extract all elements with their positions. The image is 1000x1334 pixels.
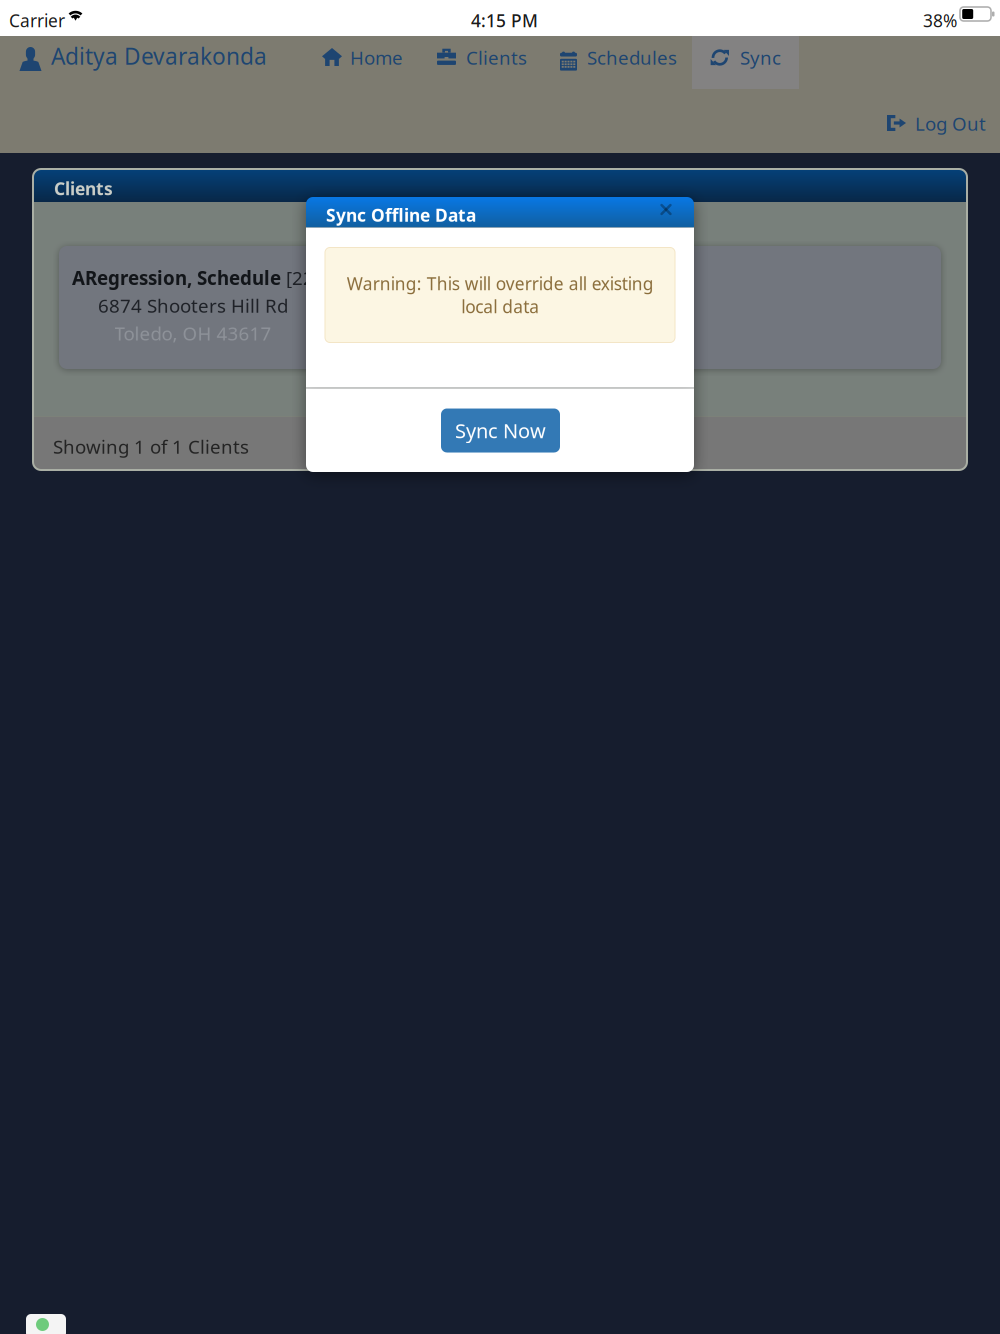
staticText: ARegression, Schedule [72,265,281,290]
staticText: 6874 Shooters Hill Rd [98,293,288,318]
staticText: Clients [466,45,527,70]
staticText: Aditya Devarakonda [51,41,267,71]
staticText: 38% [923,9,957,32]
staticText: Sync [740,45,781,70]
staticText: Sync Offline Data [326,203,476,226]
button[interactable]: Close [651,196,681,222]
button[interactable]: Schedules [0,36,1000,89]
button[interactable]: Log Out [877,100,999,146]
button[interactable]: ARegression, Schedule [59,246,941,369]
staticText: 4:15 PM [471,9,538,32]
staticText: Clients [54,177,113,200]
staticText: [22 [281,265,314,290]
staticText: Carrier [9,9,65,32]
staticText: Warning: This will override all existing… [346,272,653,318]
staticText: Schedules [587,45,677,70]
staticText: Log Out [915,111,986,136]
button[interactable]: Sync Now [441,408,560,452]
staticText: Home [350,45,403,70]
button[interactable]: Sync [0,36,1000,89]
button[interactable]: Clients [0,36,1000,89]
staticText: Showing 1 of 1 Clients [53,434,249,459]
button[interactable]: Aditya Devarakonda [0,36,260,89]
staticText: Sync Now [455,417,546,444]
staticText: Toledo, OH 43617 [114,321,271,346]
button[interactable]: Home [0,36,1000,89]
